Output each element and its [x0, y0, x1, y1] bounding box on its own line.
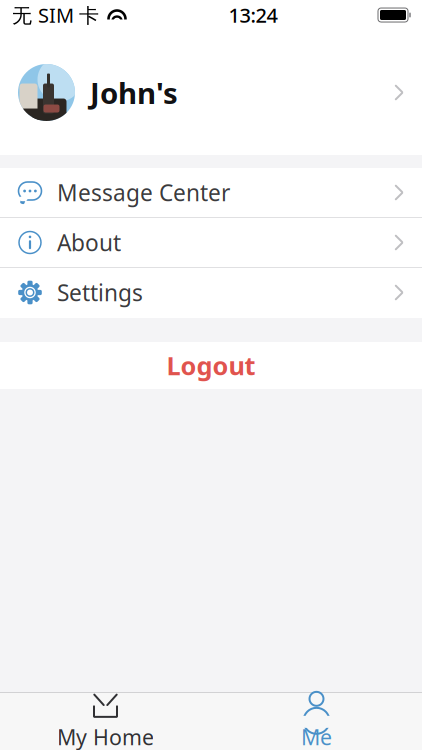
button[interactable]: John's: [0, 30, 422, 155]
button[interactable]: My Home: [0, 693, 211, 750]
staticText: Me: [301, 723, 332, 750]
button[interactable]: Me: [211, 693, 422, 750]
button[interactable]: About: [0, 218, 422, 268]
button[interactable]: Logout: [0, 342, 422, 389]
staticText: 13:24: [228, 2, 277, 28]
staticText: 无 SIM 卡: [12, 2, 99, 28]
staticText: Logout: [166, 349, 255, 382]
button[interactable]: Message Center: [0, 168, 422, 218]
button[interactable]: Settings: [0, 268, 422, 318]
staticText: Settings: [57, 277, 143, 307]
staticText: John's: [90, 73, 178, 112]
staticText: Message Center: [57, 177, 230, 207]
staticText: My Home: [57, 723, 154, 750]
staticText: About: [57, 227, 121, 257]
